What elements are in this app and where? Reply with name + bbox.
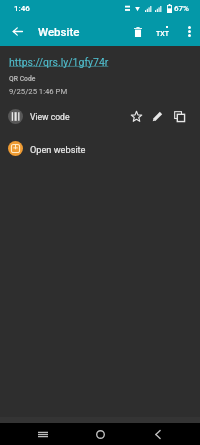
- staticText: Website: [38, 25, 80, 38]
- button[interactable]: Back: [147, 423, 169, 445]
- staticText: 1:46: [14, 4, 30, 13]
- staticText: 67%: [174, 4, 189, 13]
- button[interactable]: Back: [6, 20, 28, 42]
- staticText: 9/25/25 1:46 PM: [9, 87, 68, 96]
- button[interactable]: Copy: [169, 106, 189, 126]
- button[interactable]: View code: [0, 100, 200, 132]
- staticText: QR Code: [9, 75, 36, 83]
- staticText: https://qrs.ly/1gfy74r: [9, 56, 109, 68]
- button[interactable]: Favorite: [126, 106, 146, 126]
- button[interactable]: Edit: [147, 106, 167, 126]
- button[interactable]: Home: [89, 423, 111, 445]
- button[interactable]: Delete: [127, 20, 149, 42]
- button[interactable]: Text file: [151, 20, 173, 42]
- button[interactable]: More options: [178, 20, 200, 42]
- staticText: View code: [30, 112, 70, 122]
- staticText: TXT: [156, 30, 169, 38]
- button[interactable]: Recent apps: [32, 423, 54, 445]
- staticText: Open website: [30, 144, 86, 155]
- button[interactable]: Open website: [0, 132, 200, 164]
